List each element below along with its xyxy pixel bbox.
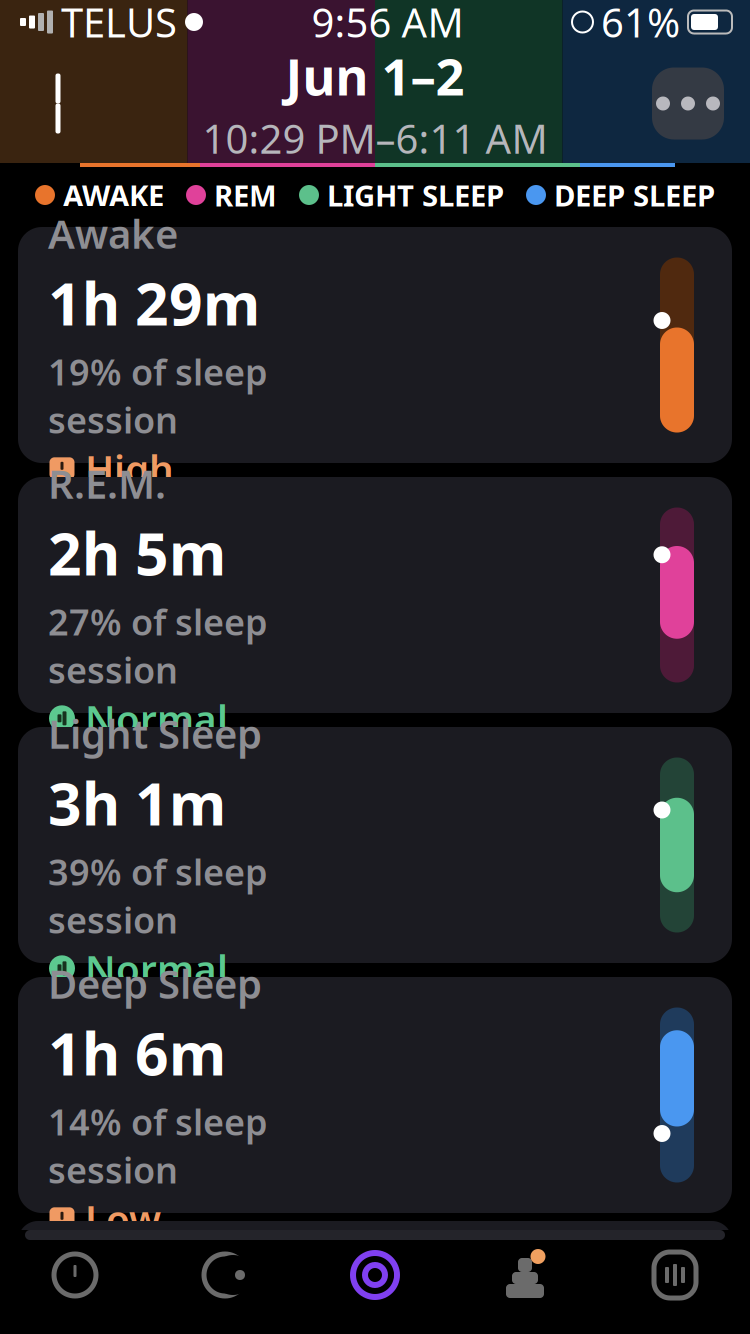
button[interactable]: More options <box>652 67 724 139</box>
button[interactable]: Alarm <box>0 1240 150 1310</box>
staticText: 61% <box>601 0 680 48</box>
button[interactable]: R.E.M. <box>18 477 732 713</box>
staticText: DEEP SLEEP <box>554 175 715 214</box>
staticText: High <box>85 443 174 494</box>
staticText: TELUS <box>61 0 177 48</box>
staticText: 9:56 AM <box>311 0 463 48</box>
button[interactable]: Back <box>22 67 94 139</box>
button[interactable]: Sleep <box>300 1240 450 1310</box>
staticText: Low <box>85 1193 161 1244</box>
staticText: 39% of sleep session <box>48 848 268 943</box>
staticText: Awake <box>48 207 178 260</box>
button[interactable]: Journey <box>450 1240 600 1310</box>
staticText: 14% of sleep session <box>48 1098 268 1193</box>
staticText: Light Sleep <box>48 707 262 760</box>
staticText: 2h 5m <box>48 514 226 592</box>
staticText: R.E.M. <box>48 457 166 510</box>
staticText: 3h 1m <box>48 764 226 842</box>
button[interactable]: Deep Sleep <box>18 977 732 1213</box>
staticText: Deep Sleep <box>48 957 262 1010</box>
staticText: 1h 29m <box>48 264 260 342</box>
staticText: Normal <box>85 693 228 744</box>
button[interactable]: Sounds <box>150 1240 300 1310</box>
staticText: AWAKE <box>63 175 164 214</box>
staticText: LIGHT SLEEP <box>327 175 504 214</box>
staticText: 19% of sleep session <box>48 348 268 443</box>
staticText: 10:29 PM–6:11 AM <box>202 112 547 165</box>
button[interactable]: Awake <box>18 227 732 463</box>
staticText: REM <box>214 175 277 214</box>
button[interactable]: Statistics <box>600 1240 750 1310</box>
button[interactable]: Light Sleep <box>18 727 732 963</box>
staticText: 27% of sleep session <box>48 598 268 693</box>
staticText: Normal <box>85 943 228 994</box>
staticText: 1h 6m <box>48 1014 226 1092</box>
staticText: Jun 1–2 <box>285 42 464 110</box>
